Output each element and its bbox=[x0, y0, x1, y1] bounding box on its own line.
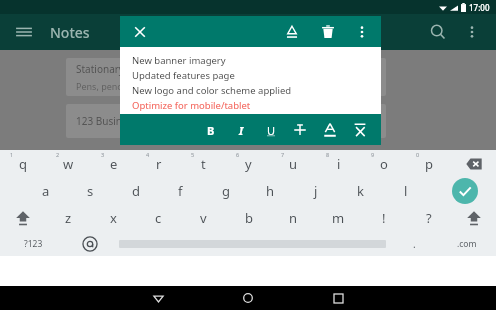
button[interactable]: l bbox=[383, 177, 428, 204]
staticText: c bbox=[155, 209, 162, 227]
button[interactable]: r bbox=[136, 150, 181, 177]
button[interactable]: p bbox=[406, 150, 451, 177]
button[interactable]: 123 Business — new colour scheme applied… bbox=[66, 104, 386, 138]
staticText: t bbox=[201, 155, 206, 173]
staticText: j bbox=[314, 182, 318, 200]
staticText: v bbox=[200, 209, 207, 227]
staticText: U bbox=[267, 123, 276, 138]
staticText: 9 bbox=[371, 151, 375, 158]
button[interactable]: d bbox=[113, 177, 158, 204]
button[interactable]: b bbox=[226, 204, 271, 231]
button[interactable]: Formatting bbox=[281, 21, 303, 43]
staticText: 7 bbox=[281, 151, 285, 158]
button[interactable]: Home bbox=[231, 286, 265, 310]
button[interactable]: j bbox=[293, 177, 338, 204]
staticText: 1 bbox=[10, 151, 14, 158]
staticText: 5 bbox=[191, 151, 195, 158]
staticText: Updated features page bbox=[132, 69, 235, 82]
button[interactable]: ! bbox=[361, 204, 406, 231]
button[interactable]: Recent apps bbox=[321, 286, 355, 310]
staticText: g bbox=[222, 182, 230, 200]
button[interactable]: At sign bbox=[67, 231, 113, 256]
button[interactable]: o bbox=[361, 150, 406, 177]
button[interactable]: Back bbox=[141, 286, 175, 310]
staticText: s bbox=[87, 182, 94, 200]
staticText: r bbox=[156, 155, 162, 173]
staticText: I bbox=[239, 123, 244, 138]
button[interactable]: Clear formatting bbox=[349, 119, 371, 141]
staticText: i bbox=[337, 155, 341, 173]
button[interactable]: B bbox=[200, 119, 222, 141]
button[interactable]: Delete bbox=[317, 21, 339, 43]
button[interactable]: More options bbox=[351, 21, 373, 43]
button[interactable]: u bbox=[271, 150, 316, 177]
button[interactable]: c bbox=[136, 204, 181, 231]
staticText: 8 bbox=[326, 151, 330, 158]
button[interactable]: Close bbox=[128, 20, 152, 44]
staticText: 123 Business — new colour scheme applied… bbox=[76, 114, 289, 128]
button[interactable]: ? bbox=[406, 204, 451, 231]
staticText: Notes bbox=[50, 23, 90, 42]
button[interactable]: More options bbox=[460, 20, 484, 44]
staticText: d bbox=[132, 182, 140, 200]
staticText: p bbox=[425, 155, 433, 173]
button[interactable]: g bbox=[203, 177, 248, 204]
button[interactable]: f bbox=[158, 177, 203, 204]
button[interactable]: Open navigation drawer bbox=[12, 20, 36, 44]
staticText: Stationary bbox=[76, 62, 124, 76]
button[interactable]: I bbox=[230, 119, 252, 141]
button[interactable]: w bbox=[46, 150, 91, 177]
staticText: y bbox=[245, 155, 252, 173]
staticText: New banner imagery bbox=[132, 54, 226, 67]
staticText: . bbox=[413, 237, 416, 251]
button[interactable]: Strikethrough bbox=[289, 119, 311, 141]
button[interactable]: Stationary bbox=[66, 58, 386, 96]
button[interactable]: e bbox=[91, 150, 136, 177]
staticText: x bbox=[110, 209, 117, 227]
button[interactable]: h bbox=[248, 177, 293, 204]
staticText: ! bbox=[382, 209, 386, 227]
button[interactable]: Shift bbox=[451, 204, 496, 231]
button[interactable]: Text colour bbox=[319, 119, 341, 141]
button[interactable]: Enter bbox=[433, 177, 496, 204]
staticText: n bbox=[289, 209, 298, 227]
staticText: a bbox=[42, 182, 50, 200]
staticText: l bbox=[404, 182, 408, 200]
staticText: Optimize for mobile/tablet bbox=[132, 99, 251, 112]
button[interactable]: s bbox=[68, 177, 113, 204]
button[interactable]: U bbox=[260, 119, 282, 141]
staticText: 17:00 bbox=[469, 2, 490, 13]
button[interactable]: Space bbox=[113, 231, 391, 256]
staticText: B bbox=[207, 123, 215, 138]
button[interactable]: Search bbox=[426, 20, 450, 44]
button[interactable]: .com bbox=[437, 231, 496, 256]
staticText: z bbox=[65, 209, 72, 227]
staticText: .com bbox=[457, 238, 477, 250]
button[interactable]: k bbox=[338, 177, 383, 204]
button[interactable]: y bbox=[226, 150, 271, 177]
button[interactable]: m bbox=[316, 204, 361, 231]
button[interactable]: v bbox=[181, 204, 226, 231]
staticText: 4 bbox=[146, 151, 150, 158]
staticText: Pens, pencils, paper and more bbox=[76, 80, 204, 92]
staticText: m bbox=[332, 209, 345, 227]
button[interactable]: x bbox=[91, 204, 136, 231]
button[interactable]: z bbox=[46, 204, 91, 231]
staticText: u bbox=[289, 155, 298, 173]
staticText: f bbox=[178, 182, 183, 200]
button[interactable]: q bbox=[0, 150, 46, 177]
staticText: b bbox=[245, 209, 253, 227]
button[interactable]: Backspace bbox=[451, 150, 496, 177]
button[interactable]: Shift bbox=[0, 204, 46, 231]
staticText: 2 bbox=[56, 151, 60, 158]
button[interactable]: . bbox=[391, 231, 437, 256]
staticText: ?123 bbox=[24, 238, 43, 250]
button[interactable]: a bbox=[23, 177, 68, 204]
staticText: e bbox=[110, 155, 118, 173]
button[interactable]: ?123 bbox=[0, 231, 67, 256]
button[interactable]: i bbox=[316, 150, 361, 177]
staticText: 6 bbox=[236, 151, 240, 158]
staticText: w bbox=[63, 155, 74, 173]
button[interactable]: t bbox=[181, 150, 226, 177]
button[interactable]: n bbox=[271, 204, 316, 231]
